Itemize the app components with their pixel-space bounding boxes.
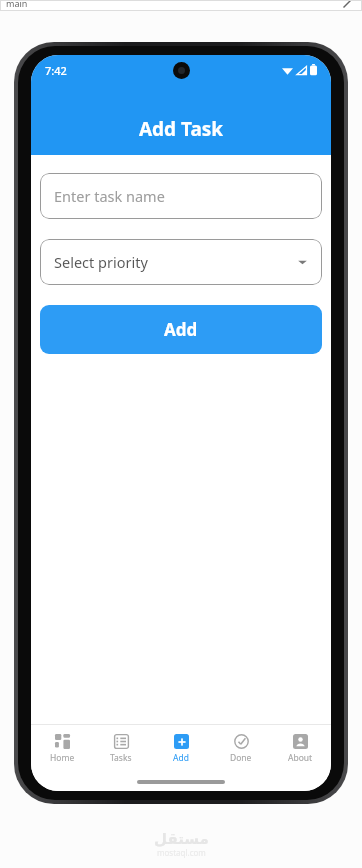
button[interactable]: Select priority <box>40 239 322 285</box>
staticText: Select priority <box>54 252 148 272</box>
staticText: Enter task name <box>54 186 165 206</box>
button[interactable]: Enter task name <box>40 173 322 219</box>
button[interactable]: Add <box>152 730 210 768</box>
staticText: mostaql.com <box>157 847 206 858</box>
staticText: main <box>6 0 28 8</box>
staticText: Add Task <box>31 116 331 142</box>
staticText: مستقل <box>154 830 209 847</box>
staticText: About <box>288 752 313 764</box>
staticText: Home <box>50 752 75 764</box>
button[interactable]: Done <box>212 730 270 768</box>
staticText: 7:42 <box>45 63 67 78</box>
button[interactable]: Add <box>40 305 322 354</box>
button[interactable]: About <box>271 730 329 768</box>
button[interactable]: Home <box>33 730 91 768</box>
staticText: Done <box>230 752 252 764</box>
staticText: Add <box>173 752 189 764</box>
staticText: Tasks <box>110 752 132 764</box>
button[interactable]: Tasks <box>92 730 150 768</box>
staticText: Add <box>164 318 198 341</box>
